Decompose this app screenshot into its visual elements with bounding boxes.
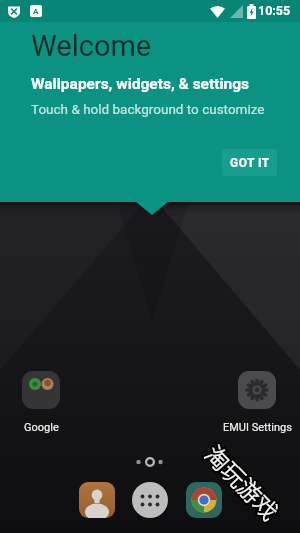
button[interactable] xyxy=(79,482,115,518)
staticText: 淘玩游戏 xyxy=(199,437,287,526)
staticText: Google xyxy=(24,421,59,434)
button[interactable] xyxy=(22,371,60,409)
staticText: Wallpapers, widgets, & settings xyxy=(31,75,250,93)
button[interactable]: GOT IT xyxy=(222,149,277,176)
button[interactable] xyxy=(132,482,168,518)
staticText: GOT IT xyxy=(230,156,270,170)
staticText: Welcome xyxy=(31,29,152,63)
staticText: 10:55 xyxy=(258,3,291,18)
staticText: Touch & hold background to customize xyxy=(31,101,265,117)
button[interactable] xyxy=(186,482,222,518)
staticText: A xyxy=(33,7,39,16)
staticText: EMUI Settings xyxy=(223,421,292,434)
staticText: 淘玩游戏 xyxy=(199,437,287,526)
button[interactable] xyxy=(238,371,276,409)
